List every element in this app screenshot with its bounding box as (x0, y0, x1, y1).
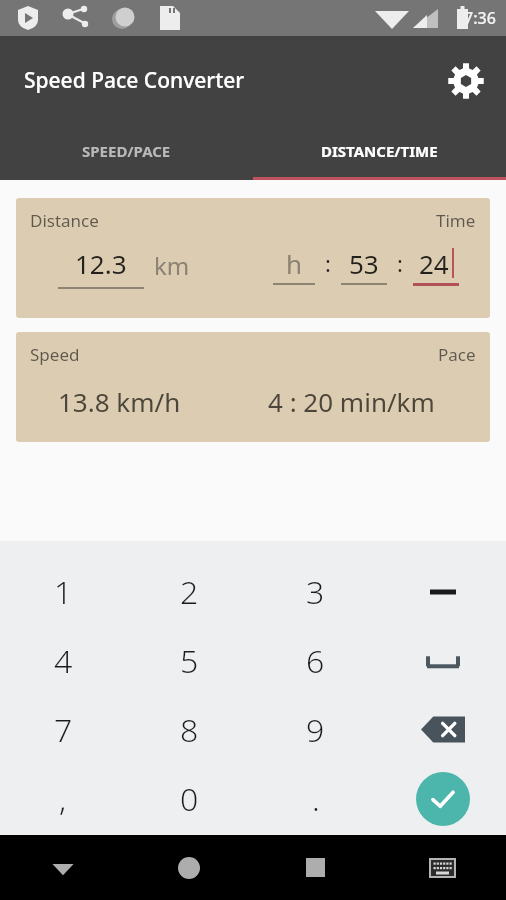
staticText: Speed Pace Converter (24, 66, 245, 95)
staticText: 6 (306, 639, 325, 683)
staticText: 13.8 km/h (58, 384, 181, 419)
button[interactable]: Speed (16, 332, 490, 442)
staticText: 8 (180, 708, 199, 752)
staticText: h (286, 246, 303, 279)
button[interactable]: 7 (0, 695, 126, 764)
button[interactable]: 1 (0, 557, 126, 626)
button[interactable]: 8 (126, 695, 252, 764)
button[interactable]: 6 (252, 626, 379, 695)
staticText: SPEED/PACE (82, 141, 171, 161)
button[interactable]: Done (379, 764, 506, 833)
staticText: 3 (306, 570, 325, 614)
button[interactable]: Recent apps (252, 835, 379, 900)
staticText: 4 (54, 639, 73, 683)
button[interactable]: DISTANCE/TIME (253, 125, 506, 177)
staticText: Pace (438, 343, 476, 366)
button[interactable]: Minus (379, 557, 506, 626)
button[interactable]: Distance (16, 198, 490, 318)
staticText: 2 (180, 570, 199, 614)
button[interactable]: Backspace (379, 695, 506, 764)
staticText: 5 (180, 639, 199, 683)
button[interactable]: 3 (252, 557, 379, 626)
button[interactable]: SPEED/PACE (0, 125, 253, 177)
button[interactable]: 9 (252, 695, 379, 764)
button[interactable]: Back (0, 835, 126, 900)
button[interactable]: Space (379, 626, 506, 695)
staticText: Distance (30, 209, 99, 232)
button[interactable]: Settings (438, 53, 494, 109)
staticText: 0 (180, 777, 199, 821)
button[interactable]: 0 (126, 764, 252, 833)
button[interactable]: Home (126, 835, 252, 900)
button[interactable]: 5 (126, 626, 252, 695)
staticText: 1 (54, 570, 73, 614)
button[interactable]: 2 (126, 557, 252, 626)
staticText: km (154, 249, 190, 282)
staticText: : (397, 248, 403, 278)
staticText: 7:36 (464, 7, 496, 29)
button[interactable]: . (252, 764, 379, 833)
staticText: . (312, 777, 320, 821)
staticText: 4 : 20 min/km (268, 384, 435, 419)
staticText: DISTANCE/TIME (321, 141, 438, 161)
button[interactable]: 4 (0, 626, 126, 695)
staticText: : (325, 248, 331, 278)
button[interactable]: Switch keyboard (379, 835, 506, 900)
button[interactable]: , (0, 764, 126, 833)
staticText: Time (436, 209, 476, 232)
staticText: 7 (54, 708, 73, 752)
staticText: , (59, 777, 67, 821)
staticText: 9 (306, 708, 325, 752)
staticText: 53 (349, 246, 379, 279)
staticText: Speed (30, 343, 80, 366)
staticText: 24 (419, 246, 449, 279)
staticText: 12.3 (75, 246, 127, 281)
